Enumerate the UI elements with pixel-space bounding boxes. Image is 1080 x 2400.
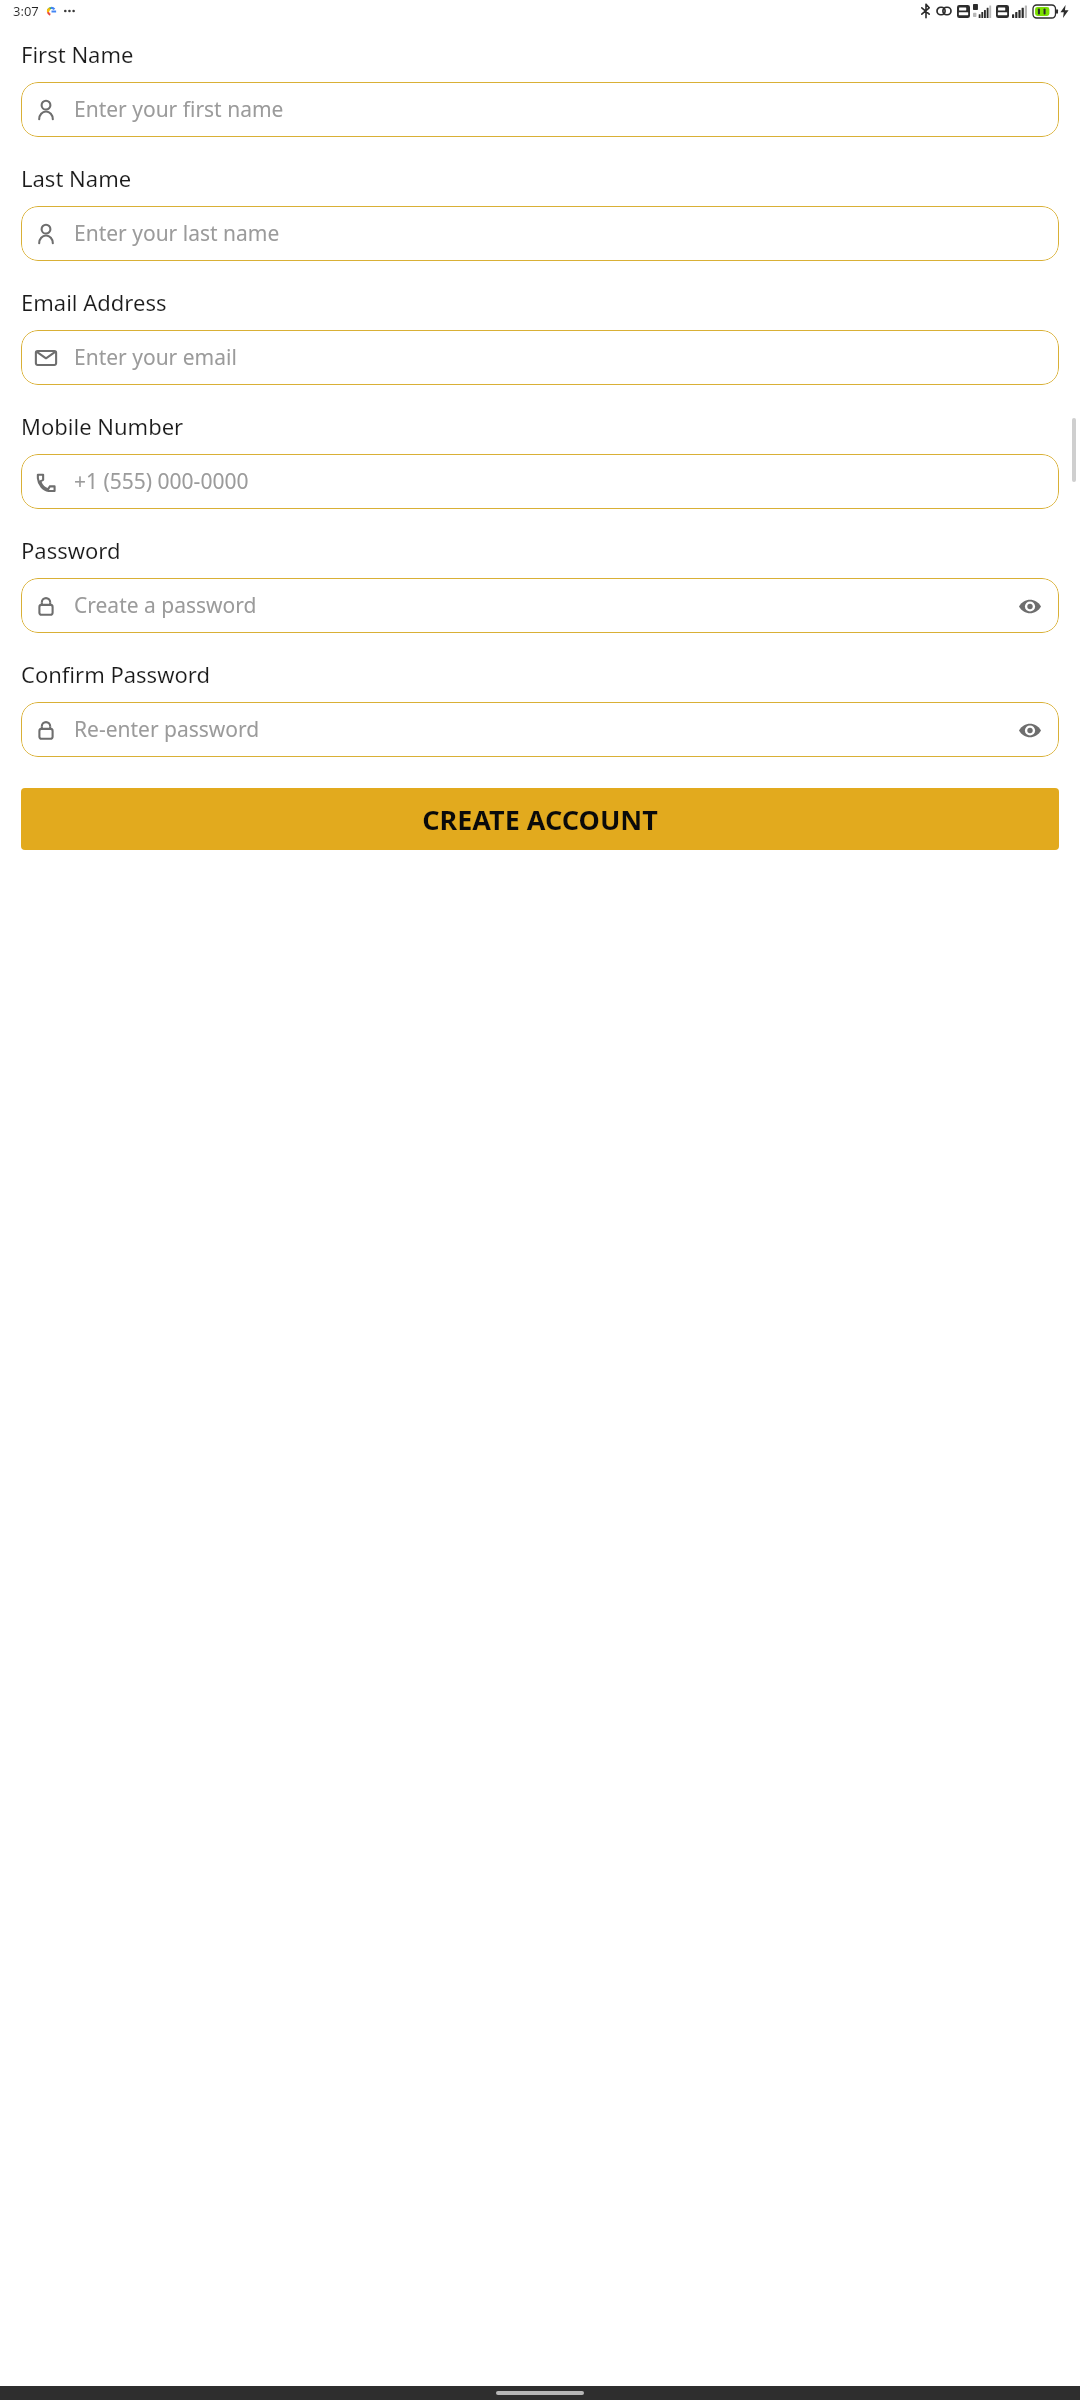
button[interactable]: CREATE ACCOUNT [21,788,1059,850]
button[interactable]: Enter your first name [21,82,1059,137]
button[interactable]: +1 (555) 000-0000 [21,454,1059,509]
button[interactable]: Show password [1015,591,1045,621]
button[interactable]: Show password [1015,715,1045,745]
staticText: Enter your email [74,343,1045,372]
staticText: Re-enter password [74,715,1015,744]
staticText: 3:07 [13,2,39,20]
staticText: Create a password [74,591,1015,620]
staticText: CREATE ACCOUNT [422,801,658,838]
button[interactable]: Enter your email [21,330,1059,385]
staticText: Last Name [21,163,132,193]
button[interactable]: Enter your last name [21,206,1059,261]
staticText: First Name [21,39,134,69]
staticText: Mobile Number [21,411,184,441]
staticText: Enter your first name [74,95,1045,124]
button[interactable]: Re-enter password [21,702,1059,757]
staticText: Password [21,535,121,565]
staticText: +1 (555) 000-0000 [74,467,1045,496]
staticText: Confirm Password [21,659,210,689]
staticText: Email Address [21,287,167,317]
staticText: Enter your last name [74,219,1045,248]
button[interactable]: Create a password [21,578,1059,633]
